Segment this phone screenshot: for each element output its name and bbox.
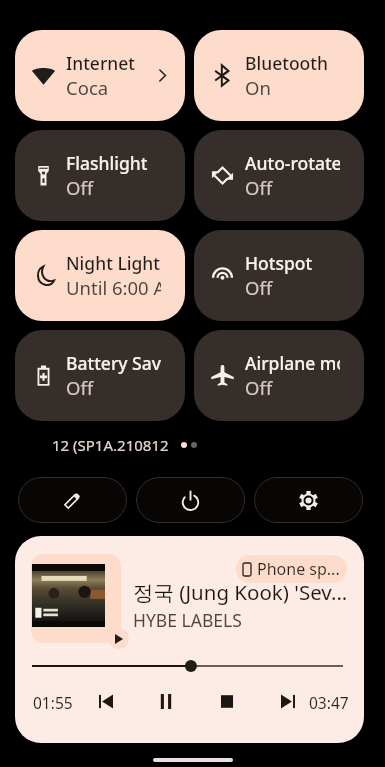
staticText: Flashlight <box>66 151 148 175</box>
staticText: Battery Saver <box>66 351 161 375</box>
staticText: HYBE LABELS <box>133 608 242 632</box>
staticText: Night Light <box>66 251 160 275</box>
staticText: Bluetooth <box>245 51 328 75</box>
staticText: Phone sp... <box>257 558 340 580</box>
button[interactable]: Next <box>267 680 309 722</box>
button[interactable]: Hotspot <box>194 230 364 321</box>
button[interactable]: Airplane mode <box>194 330 364 421</box>
staticText: 01:55 <box>33 692 73 713</box>
staticText: Airplane mode <box>245 351 340 375</box>
button[interactable]: Night Light <box>15 230 185 321</box>
staticText: Off <box>245 275 273 300</box>
button[interactable]: Play <box>108 628 129 649</box>
button[interactable]: Edit tiles <box>18 477 127 523</box>
button[interactable]: Flashlight <box>15 130 185 221</box>
staticText: Internet <box>66 51 136 75</box>
staticText: Off <box>245 375 273 400</box>
button[interactable]: Auto-rotate <box>194 130 364 221</box>
staticText: 정국 (Jung Kook) 'Sev... <box>133 578 348 606</box>
staticText: Off <box>66 175 94 200</box>
button[interactable]: Internet <box>15 30 185 121</box>
button[interactable]: Pause <box>145 680 187 722</box>
staticText: Off <box>245 175 273 200</box>
staticText: Off <box>66 375 94 400</box>
button[interactable]: Bluetooth <box>194 30 364 121</box>
button[interactable]: Settings <box>254 477 363 523</box>
button[interactable]: Phone sp... <box>236 555 347 583</box>
staticText: Hotspot <box>245 251 313 275</box>
button[interactable]: Previous <box>85 680 127 722</box>
staticText: 03:47 <box>309 692 349 713</box>
button[interactable]: Battery Saver <box>15 330 185 421</box>
staticText: On <box>245 75 271 100</box>
staticText: Until 6:00 AM <box>66 275 161 300</box>
staticText: Auto-rotate <box>245 151 340 175</box>
staticText: Coca <box>66 75 109 100</box>
button[interactable]: Power <box>136 477 245 523</box>
button[interactable]: Stop <box>206 680 248 722</box>
staticText: 12 (SP1A.210812 <box>52 435 169 455</box>
